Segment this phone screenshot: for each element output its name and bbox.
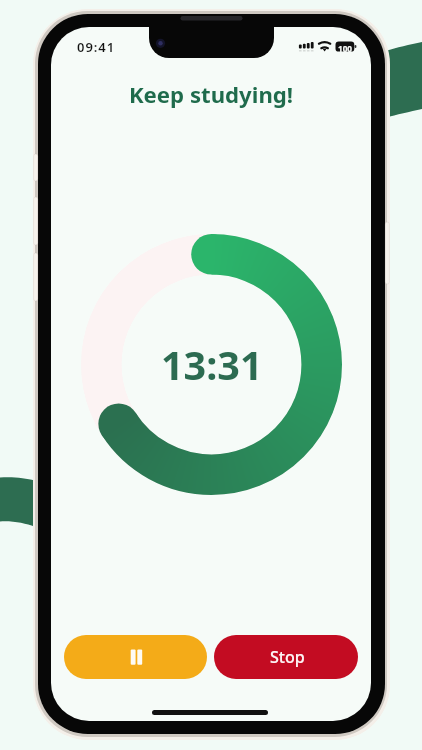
button[interactable]: Stop [214, 635, 358, 679]
staticText: 09:41 [77, 38, 116, 56]
button[interactable]: Pause [64, 635, 207, 679]
staticText: Keep studying! [51, 79, 371, 109]
staticText: 100 [338, 43, 353, 54]
staticText: 13:31 [161, 338, 263, 392]
staticText: Stop [270, 646, 305, 668]
